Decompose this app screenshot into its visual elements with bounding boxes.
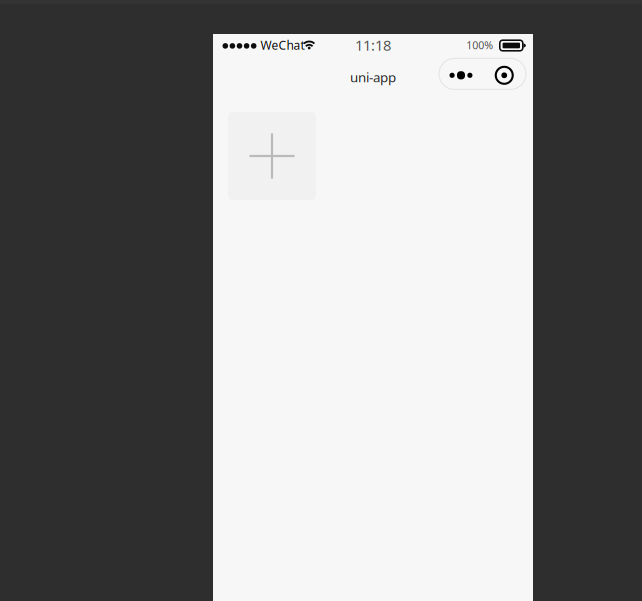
button[interactable]: Add: [228, 112, 316, 200]
staticText: 100%: [466, 38, 493, 52]
staticText: uni-app: [350, 68, 396, 86]
staticText: 11:18: [355, 35, 391, 55]
button[interactable]: Mini program menu: [439, 58, 526, 89]
staticText: WeChat: [260, 37, 304, 53]
